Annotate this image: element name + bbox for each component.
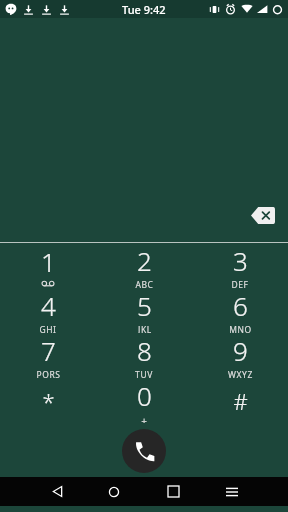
button[interactable]: 8 [96, 333, 192, 378]
button[interactable]: * [0, 378, 96, 423]
staticText: + [141, 414, 148, 423]
button[interactable]: 2 [96, 243, 192, 288]
staticText: 1 [41, 244, 56, 279]
staticText: * [42, 386, 55, 416]
staticText: 4 [41, 288, 56, 323]
staticText: 3 [233, 243, 248, 278]
staticText: WXYZ [228, 369, 253, 378]
button[interactable]: 6 [192, 288, 288, 333]
staticText: MNO [229, 324, 252, 333]
button[interactable]: 1 [0, 243, 96, 288]
staticText: 9 [233, 333, 248, 368]
button[interactable]: 4 [0, 288, 96, 333]
staticText: 2 [137, 243, 152, 278]
button[interactable]: Home [97, 477, 131, 506]
button[interactable]: 5 [96, 288, 192, 333]
button[interactable]: 9 [192, 333, 288, 378]
button[interactable]: # [192, 378, 288, 423]
staticText: 6 [233, 288, 248, 323]
staticText: JKL [138, 324, 152, 333]
staticText: 7 [41, 333, 56, 368]
staticText: # [233, 386, 248, 416]
staticText: ABC [135, 279, 154, 288]
staticText: 0 [137, 378, 152, 413]
staticText: TUV [135, 369, 153, 378]
button[interactable]: Back [40, 477, 74, 506]
button[interactable]: Recent apps [156, 477, 190, 506]
staticText: GHI [39, 324, 57, 333]
button[interactable]: Menu [215, 477, 249, 506]
staticText: 5 [137, 288, 152, 323]
button[interactable]: 3 [192, 243, 288, 288]
button[interactable]: 7 [0, 333, 96, 378]
staticText: DEF [231, 279, 249, 288]
button[interactable]: Backspace [246, 202, 280, 228]
staticText: 8 [137, 333, 152, 368]
button[interactable]: Call [122, 429, 166, 473]
staticText: Tue 9:42 [122, 2, 166, 17]
button[interactable]: 0 [96, 378, 192, 423]
staticText: PQRS [36, 369, 61, 378]
